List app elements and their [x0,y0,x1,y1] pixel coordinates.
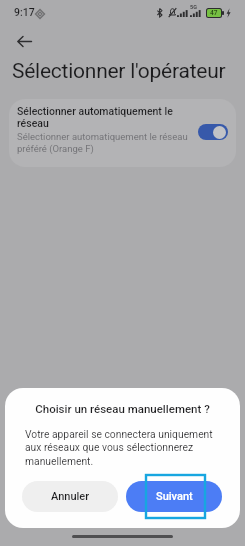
button[interactable]: Suivant [126,481,222,512]
staticText: Sélectionner automatiquement le réseau [17,105,189,129]
staticText: Sélectionner automatiquement le réseau p… [17,131,189,154]
staticText: 9:17 [14,6,35,18]
staticText: Annuler [51,490,90,503]
button[interactable]: Sélectionner automatiquement le réseau [9,99,236,167]
staticText: Suivant [156,490,193,503]
staticText: 5G [190,4,197,10]
button[interactable]: Sélectionner automatiquement le réseau [198,124,228,140]
button[interactable]: Retour [10,27,38,55]
staticText: Votre appareil se connectera uniquement … [25,428,221,468]
staticText: Sélectionner l'opérateur [12,59,226,84]
button[interactable]: Annuler [22,481,118,512]
staticText: Choisir un réseau manuellement ? [5,402,240,415]
staticText: 47 [210,9,218,17]
